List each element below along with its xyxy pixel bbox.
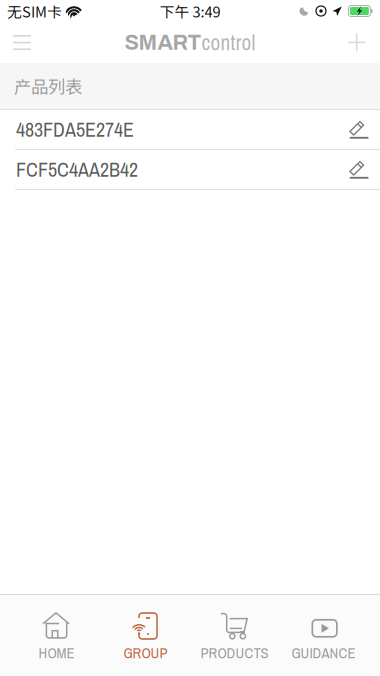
button[interactable]: Menu [0, 22, 64, 63]
staticText: FCF5C4AA2B42 [16, 156, 138, 183]
button[interactable]: HOME [12, 595, 101, 676]
staticText: SMART [124, 31, 201, 54]
staticText: PRODUCTS [200, 643, 268, 663]
staticText: 下午 3:49 [159, 0, 220, 22]
button[interactable]: GROUP [101, 595, 190, 676]
staticText: 483FDA5E274E [16, 116, 134, 143]
staticText: control [201, 28, 255, 57]
staticText: 产品列表 [14, 73, 82, 99]
staticText: GROUP [123, 643, 167, 663]
button[interactable]: 483FDA5E274E [0, 110, 380, 150]
button[interactable]: FCF5C4AA2B42 [0, 150, 380, 190]
staticText: HOME [38, 643, 74, 663]
button[interactable]: PRODUCTS [190, 595, 279, 676]
staticText: GUIDANCE [291, 643, 355, 663]
button[interactable]: GUIDANCE [279, 595, 368, 676]
staticText: 无SIM卡 [7, 0, 62, 22]
button[interactable]: Add [316, 22, 380, 63]
